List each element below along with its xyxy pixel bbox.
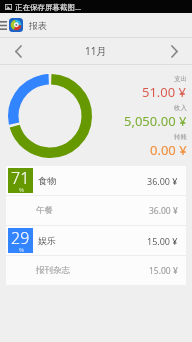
staticText: 0.00 ¥ bbox=[150, 141, 187, 159]
button[interactable]: Next month bbox=[156, 38, 192, 64]
button[interactable]: 29 bbox=[6, 226, 186, 255]
staticText: 报刊杂志 bbox=[36, 265, 70, 276]
staticText: 娱乐 bbox=[38, 235, 56, 246]
staticText: 11月 bbox=[85, 44, 107, 58]
staticText: 正在保存屏幕截图... bbox=[15, 2, 82, 12]
staticText: % bbox=[19, 246, 24, 254]
staticText: 支出 bbox=[174, 75, 187, 83]
staticText: 29 bbox=[11, 227, 30, 249]
staticText: 报表 bbox=[29, 20, 47, 31]
button[interactable]: Previous month bbox=[0, 38, 36, 64]
staticText: 收入 bbox=[174, 104, 187, 112]
button[interactable]: 71 bbox=[6, 166, 186, 195]
staticText: 51.00 ¥ bbox=[142, 83, 187, 101]
staticText: 5,050.00 ¥ bbox=[124, 112, 187, 130]
staticText: 食物 bbox=[38, 175, 56, 186]
button[interactable]: 午餐 bbox=[6, 196, 186, 225]
staticText: 15.00 ¥ bbox=[149, 265, 178, 277]
staticText: 36.00 ¥ bbox=[147, 175, 178, 187]
button[interactable]: Menu bbox=[0, 13, 7, 37]
staticText: 午餐 bbox=[36, 205, 53, 216]
staticText: 转账 bbox=[174, 133, 187, 141]
staticText: 36.00 ¥ bbox=[149, 205, 178, 217]
staticText: % bbox=[19, 186, 24, 194]
staticText: 15.00 ¥ bbox=[147, 235, 178, 247]
staticText: 71 bbox=[11, 167, 30, 189]
button[interactable]: 报刊杂志 bbox=[6, 256, 186, 285]
